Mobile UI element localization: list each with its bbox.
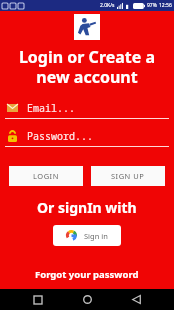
button[interactable]: Recent apps [27, 289, 49, 310]
button[interactable]: LOGIN [9, 166, 83, 186]
button[interactable]: Sign in [53, 225, 121, 246]
button[interactable]: Email... [5, 101, 169, 119]
staticText: Login or Create a new account [10, 46, 164, 87]
staticText: 2.0K/s [100, 2, 115, 9]
staticText: Email... [27, 101, 75, 115]
button[interactable]: Home [76, 289, 98, 310]
staticText: Or signIn with [37, 198, 137, 217]
button[interactable]: Forgot your password [31, 264, 143, 285]
staticText: Password... [27, 129, 93, 143]
staticText: SIGN UP [111, 171, 145, 181]
staticText: LOGIN [33, 171, 59, 181]
button[interactable]: Back [125, 289, 147, 310]
staticText: Sign in [84, 231, 108, 241]
staticText: 12:56 [159, 2, 172, 9]
button[interactable]: Password... [5, 129, 169, 147]
button[interactable]: SIGN UP [91, 166, 165, 186]
staticText: 97% [147, 2, 157, 9]
